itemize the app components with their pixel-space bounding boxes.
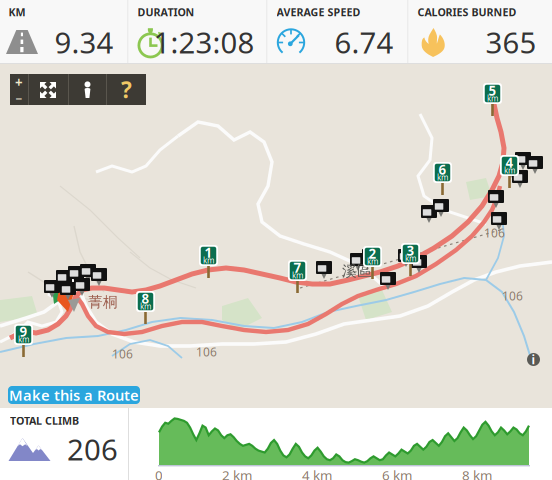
button[interactable]: Zoom out (10, 90, 28, 105)
staticText: ? (121, 74, 132, 104)
staticText: 8 (141, 290, 149, 307)
staticText: CALORIES BURNED (417, 5, 516, 19)
staticText: 5 (488, 82, 496, 99)
staticText: km (18, 334, 29, 345)
staticText: TOTAL CLIMB (10, 413, 79, 428)
staticText: 106 (112, 346, 133, 362)
staticText: 106 (484, 225, 505, 241)
staticText: km (140, 301, 151, 312)
staticText: Make this a Route (9, 385, 139, 405)
staticText: i (531, 351, 535, 367)
staticText: 4 km (302, 466, 332, 480)
staticText: 菁桐 (88, 293, 118, 311)
staticText: + (15, 74, 23, 91)
staticText: 365 (485, 22, 536, 61)
staticText: 106 (502, 288, 523, 304)
staticText: km (487, 93, 498, 104)
button[interactable]: Full screen (29, 74, 68, 105)
staticText: 1 (204, 244, 212, 261)
staticText: 8 km (462, 466, 492, 480)
staticText: km (203, 255, 214, 266)
staticText: DURATION (137, 5, 194, 19)
staticText: 2 (368, 245, 376, 262)
staticText: AVERAGE SPEED (276, 5, 360, 19)
staticText: 2 km (222, 466, 252, 480)
staticText: – (15, 89, 22, 106)
button[interactable]: Zoom in (10, 75, 28, 90)
staticText: 1:23:08 (153, 22, 254, 61)
staticText: 3 (406, 242, 414, 259)
staticText: 7 (293, 259, 301, 276)
staticText: KM (8, 5, 25, 19)
staticText: 6.74 (334, 22, 393, 61)
staticText: km (504, 165, 515, 176)
button[interactable]: Make this a Route (8, 386, 140, 404)
staticText: 6 km (382, 466, 412, 480)
staticText: km (437, 172, 448, 183)
staticText: 4 (505, 154, 513, 171)
staticText: km (405, 253, 416, 264)
staticText: km (367, 256, 378, 267)
staticText: 0 (155, 466, 163, 480)
staticText: 106 (196, 344, 217, 360)
button[interactable]: Help (107, 74, 146, 105)
staticText: 206 (67, 429, 118, 468)
staticText: 9.34 (54, 22, 113, 61)
staticText: 9 (19, 323, 27, 340)
button[interactable]: Street View (69, 74, 106, 105)
staticText: 6 (438, 161, 446, 178)
staticText: 溪區 (342, 262, 372, 280)
staticText: km (292, 270, 303, 281)
